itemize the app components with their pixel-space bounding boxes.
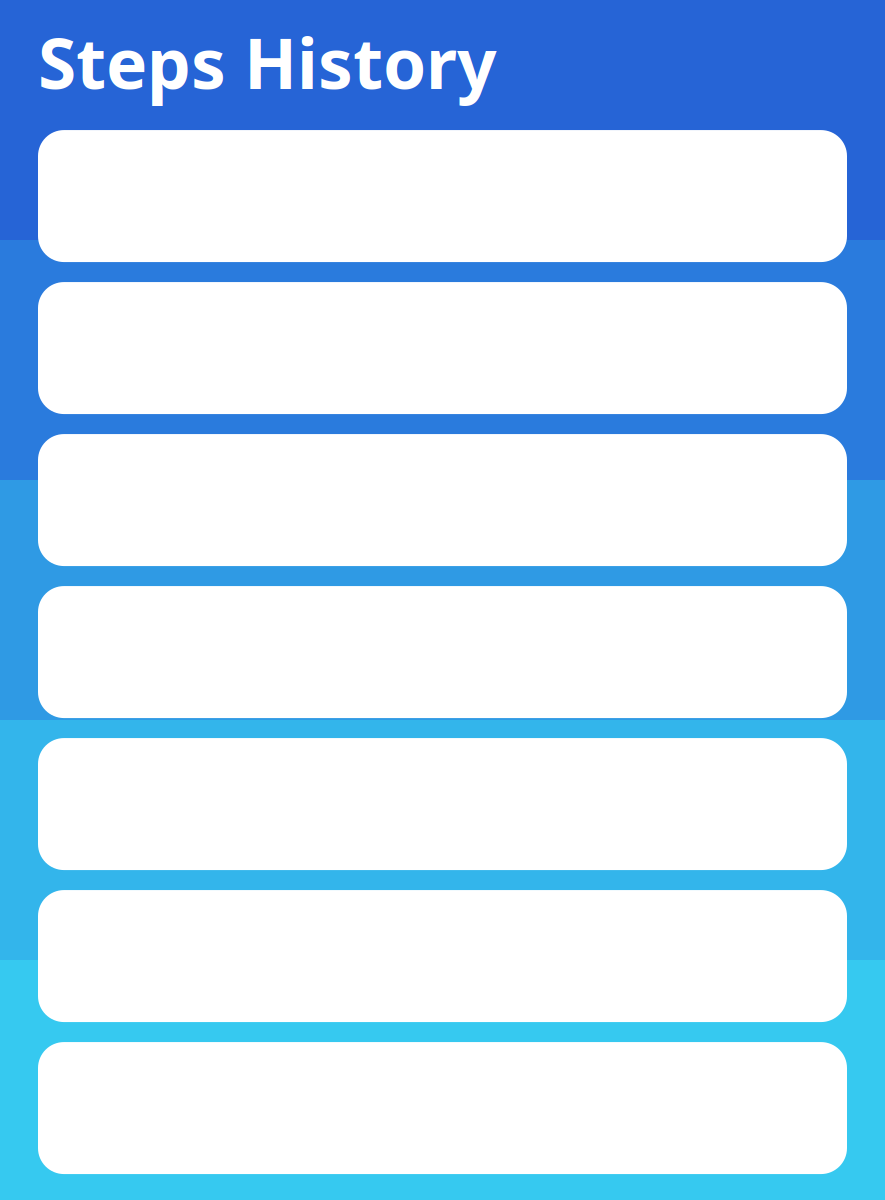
staticText: Steps History	[38, 16, 497, 108]
button[interactable]: 0	[38, 130, 847, 262]
button[interactable]: 3,422	[38, 738, 847, 870]
button[interactable]: 7,018	[38, 434, 847, 566]
button[interactable]: 10,309	[38, 282, 847, 414]
button[interactable]: 11,559	[38, 586, 847, 718]
button[interactable]: 7,453	[38, 890, 847, 1022]
button[interactable]: 18,372	[38, 1042, 847, 1174]
